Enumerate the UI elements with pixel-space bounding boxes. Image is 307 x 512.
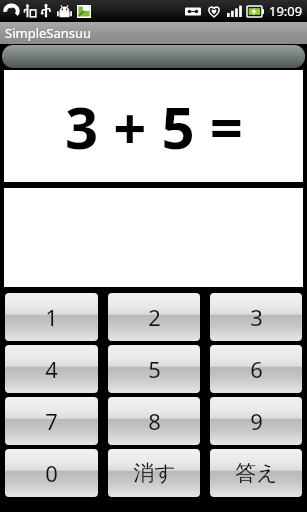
staticText: 0 — [45, 458, 58, 488]
staticText: 6 — [250, 354, 263, 384]
staticText: 3 — [250, 302, 263, 332]
button[interactable]: 3 — [210, 293, 302, 341]
staticText: 消す — [133, 460, 176, 486]
button[interactable]: 1 — [5, 293, 98, 341]
staticText: 2 — [148, 302, 161, 332]
button[interactable]: 0 — [5, 449, 98, 497]
staticText: 7 — [45, 406, 58, 436]
staticText: 5 — [148, 354, 161, 384]
staticText: 3 + 5 = — [65, 87, 243, 166]
button[interactable]: 9 — [210, 397, 302, 445]
staticText: 4 — [45, 354, 58, 384]
staticText: 答え — [235, 460, 278, 486]
staticText: SimpleSansuu — [5, 24, 92, 42]
button[interactable]: 7 — [5, 397, 98, 445]
button[interactable]: 8 — [108, 397, 200, 445]
button[interactable]: 4 — [5, 345, 98, 393]
button[interactable]: 5 — [108, 345, 200, 393]
button[interactable]: 2 — [108, 293, 200, 341]
button[interactable]: 6 — [210, 345, 302, 393]
button[interactable]: 消す — [108, 449, 200, 497]
staticText: 8 — [148, 406, 161, 436]
staticText: 9 — [250, 406, 263, 436]
button[interactable]: 答え — [210, 449, 302, 497]
staticText: 1 — [45, 302, 58, 332]
staticText: 19:09 — [269, 2, 303, 20]
